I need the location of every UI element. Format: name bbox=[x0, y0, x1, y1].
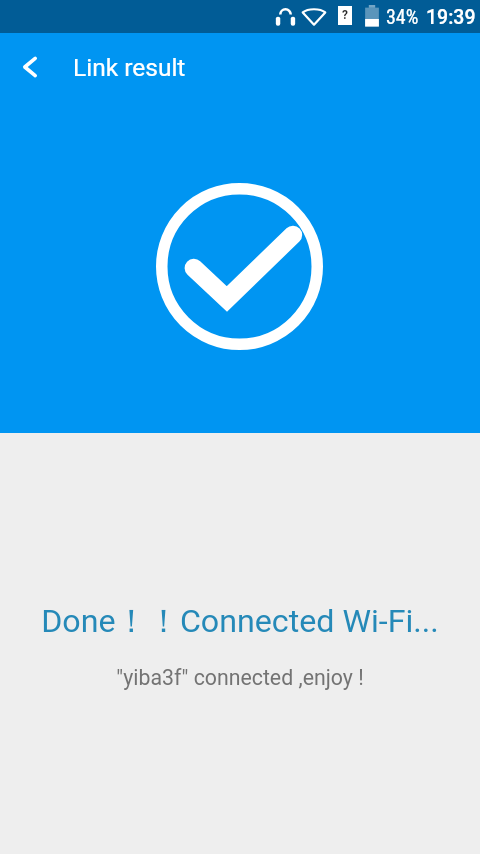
staticText: 19:39 bbox=[426, 6, 476, 29]
staticText: 34% bbox=[386, 5, 419, 28]
staticText: Done！！Connected Wi-Fi... bbox=[0, 601, 480, 642]
staticText: "yiba3f" connected ,enjoy ! bbox=[0, 665, 480, 690]
staticText: Link result bbox=[73, 53, 186, 82]
staticText: ? bbox=[342, 8, 348, 22]
button[interactable]: Back bbox=[2, 39, 58, 95]
